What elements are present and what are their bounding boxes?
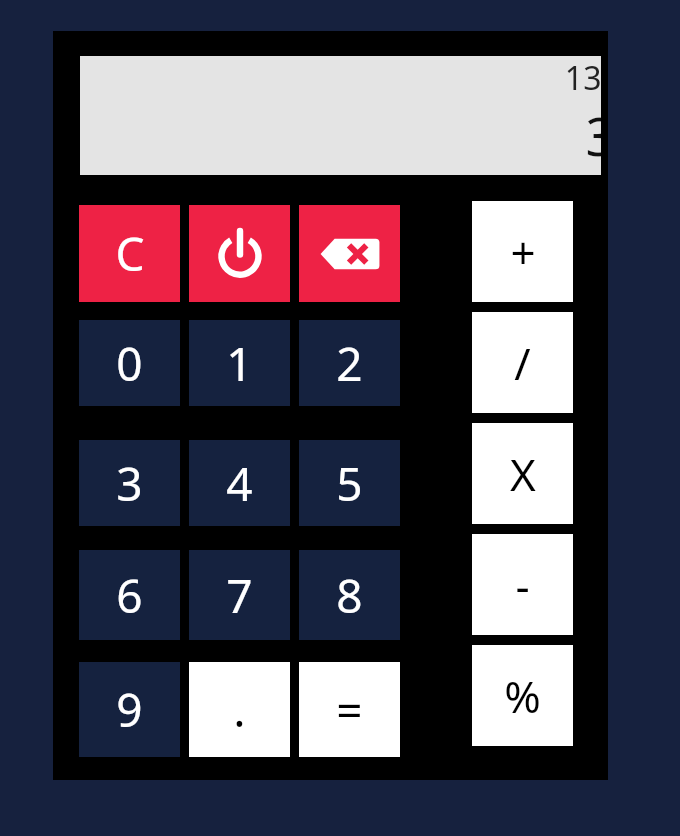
staticText: C — [115, 222, 145, 285]
staticText: % — [504, 666, 541, 726]
button[interactable]: + — [472, 201, 573, 302]
staticText: 1 — [226, 332, 253, 395]
button[interactable]: 8 — [299, 550, 400, 640]
staticText: + — [510, 222, 536, 282]
staticText: / — [514, 333, 531, 393]
button[interactable]: 9 — [79, 662, 180, 757]
button[interactable]: Power — [189, 205, 290, 302]
button[interactable]: % — [472, 645, 573, 746]
staticText: - — [515, 555, 530, 615]
staticText: = — [336, 678, 363, 741]
button[interactable]: 134 x — [80, 56, 601, 175]
staticText: 34 — [585, 100, 601, 171]
staticText: 6 — [116, 564, 143, 627]
staticText: 0 — [116, 332, 143, 395]
staticText: 7 — [226, 564, 253, 627]
button[interactable]: 4 — [189, 440, 290, 526]
button[interactable]: 2 — [299, 320, 400, 406]
staticText: . — [233, 678, 246, 741]
staticText: 3 — [116, 452, 143, 515]
button[interactable]: = — [299, 662, 400, 757]
button[interactable]: 7 — [189, 550, 290, 640]
button[interactable]: / — [472, 312, 573, 413]
button[interactable]: Backspace — [299, 205, 400, 302]
staticText: 134 x — [564, 56, 601, 100]
button[interactable]: 6 — [79, 550, 180, 640]
staticText: 2 — [336, 332, 363, 395]
staticText: 8 — [336, 564, 363, 627]
staticText: 4 — [226, 452, 253, 515]
staticText: X — [510, 444, 536, 504]
button[interactable]: . — [189, 662, 290, 757]
button[interactable]: C — [79, 205, 180, 302]
button[interactable]: X — [472, 423, 573, 524]
button[interactable]: - — [472, 534, 573, 635]
button[interactable]: 0 — [79, 320, 180, 406]
staticText: 9 — [116, 678, 143, 741]
button[interactable]: 3 — [79, 440, 180, 526]
button[interactable]: 1 — [189, 320, 290, 406]
button[interactable]: 5 — [299, 440, 400, 526]
staticText: 5 — [336, 452, 363, 515]
